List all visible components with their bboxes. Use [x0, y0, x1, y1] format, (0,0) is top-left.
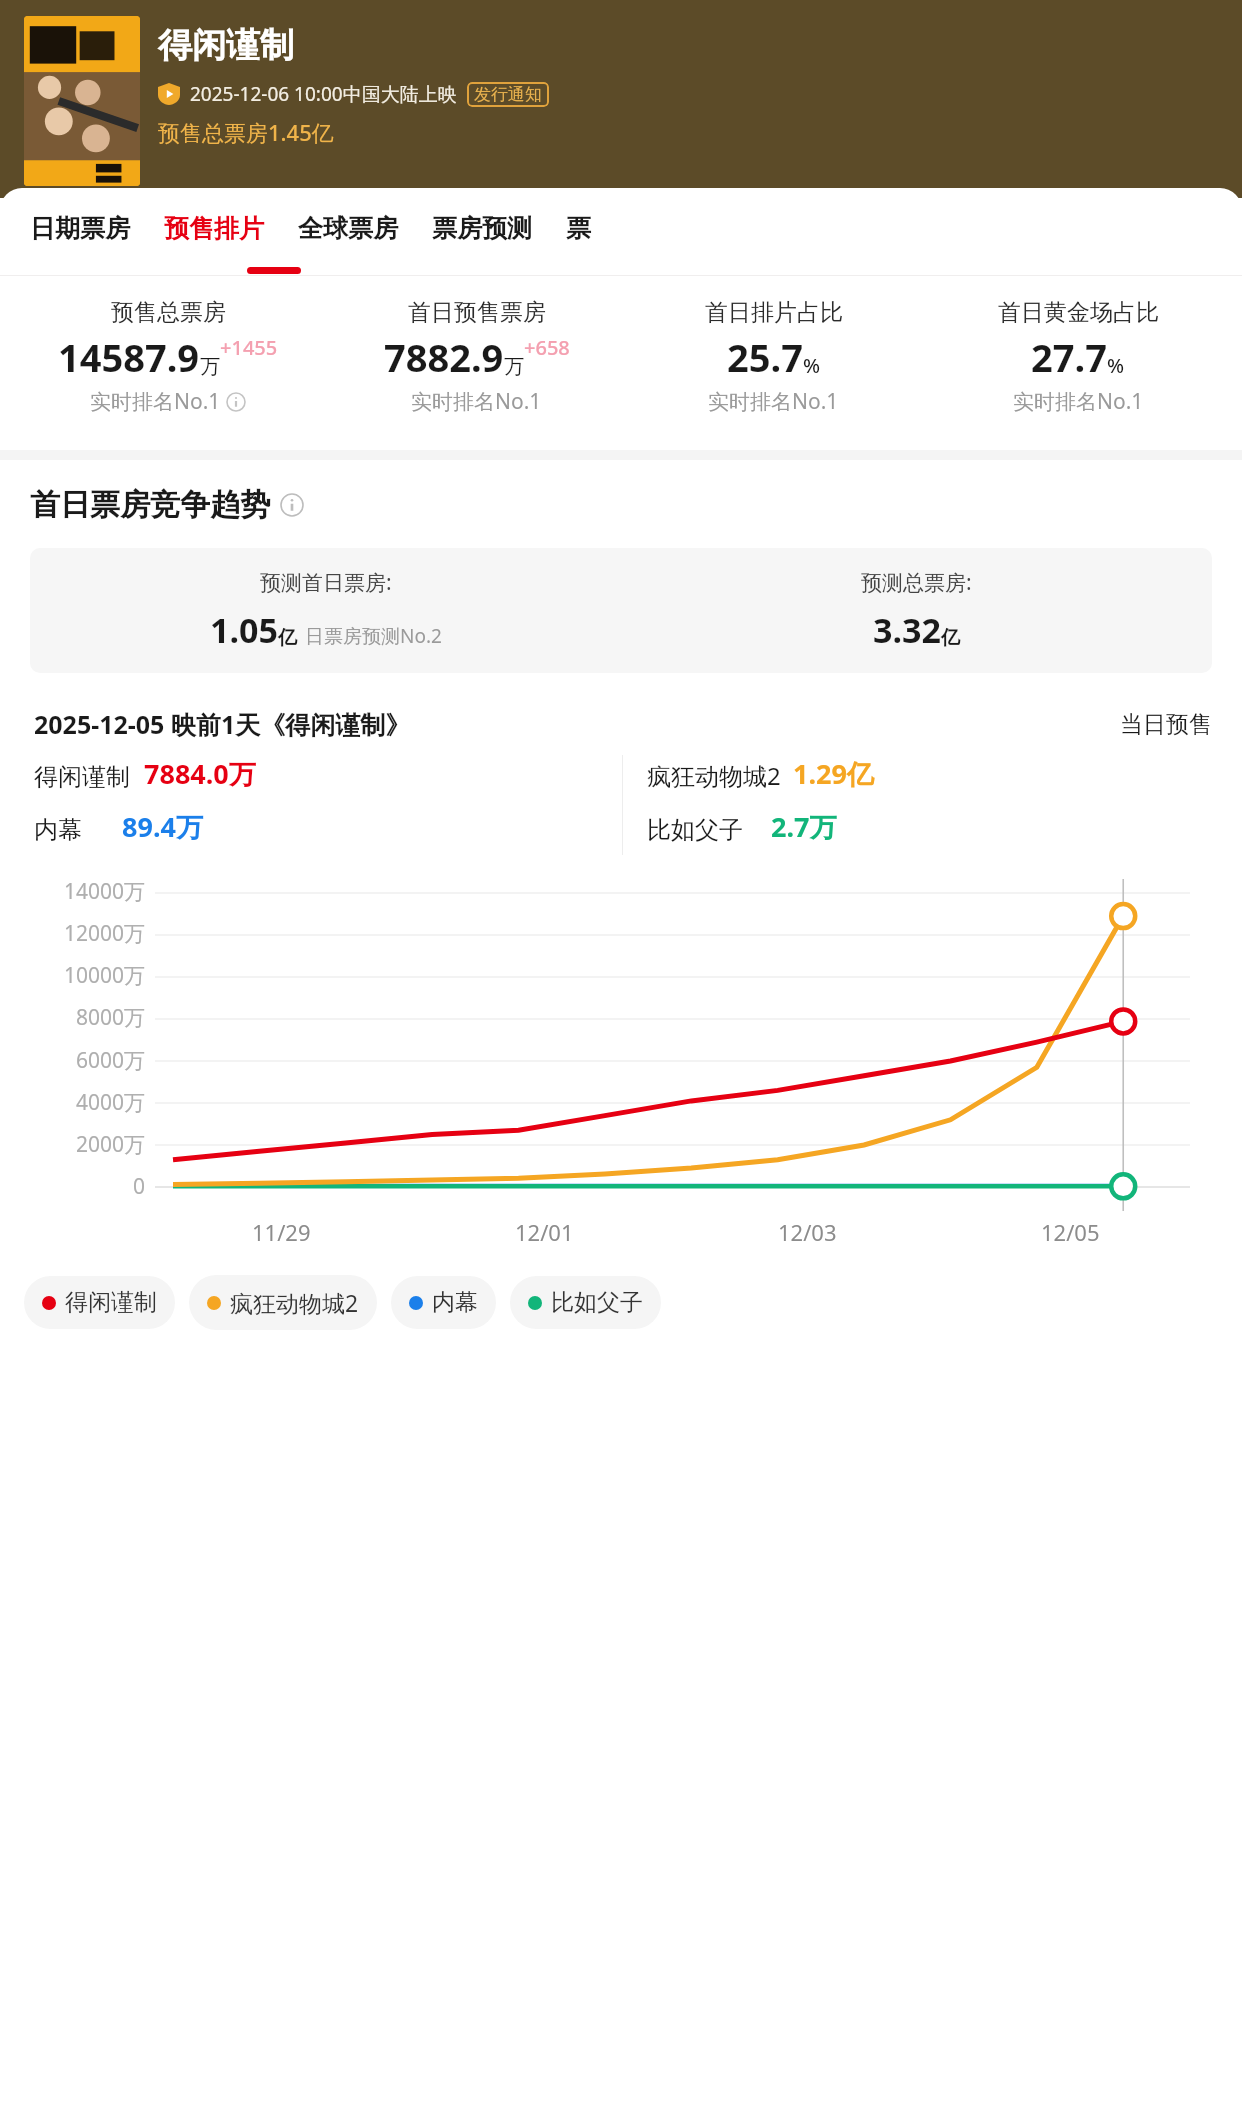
button[interactable]: 票	[566, 213, 591, 244]
staticText: 预售排片	[164, 213, 264, 244]
staticText: 比如父子	[647, 815, 743, 845]
staticText: 7884.0万	[144, 755, 256, 792]
staticText: 实时排名No.1	[411, 387, 542, 416]
staticText: 12/01	[515, 1217, 574, 1247]
staticText: 首日预售票房	[408, 298, 546, 327]
staticText: 2025-12-06 10:00中国大陆上映	[190, 81, 457, 107]
staticText: +658	[524, 334, 570, 361]
button[interactable]: 2025-12-05 映前1天《得闲谨制》	[22, 693, 1220, 861]
staticText: %	[803, 352, 821, 379]
staticText: 内幕	[34, 815, 82, 845]
staticText: 全球票房	[298, 213, 398, 244]
staticText: 14000万	[64, 877, 146, 906]
button[interactable]: 票房预测	[432, 213, 566, 244]
staticText: 万	[200, 354, 220, 379]
button[interactable]: 内幕	[391, 1276, 496, 1329]
staticText: 得闲谨制	[158, 24, 294, 67]
staticText: 疯狂动物城2	[647, 759, 781, 792]
button[interactable]: 预售排片	[164, 213, 298, 244]
button[interactable]: 比如父子	[510, 1276, 661, 1329]
staticText: %	[1107, 352, 1125, 379]
button[interactable]: 预测首日票房:	[30, 548, 1212, 673]
button[interactable]: 疯狂动物城2	[189, 1275, 377, 1330]
staticText: 内幕	[432, 1288, 478, 1317]
button[interactable]: 预售总票房	[8, 298, 328, 416]
staticText: 25.7	[727, 331, 803, 383]
staticText: 2000万	[76, 1130, 146, 1159]
staticText: 27.7	[1031, 331, 1107, 383]
staticText: 万	[504, 354, 524, 379]
staticText: 亿	[278, 626, 297, 650]
staticText: 3.32	[873, 607, 941, 653]
staticText: 票	[566, 213, 591, 244]
button[interactable]: 发行通知	[467, 82, 549, 107]
staticText: 首日票房竞争趋势	[30, 486, 270, 524]
staticText: 10000万	[64, 961, 146, 990]
staticText: 得闲谨制	[65, 1288, 157, 1317]
staticText: 4000万	[76, 1088, 146, 1117]
staticText: 预售总票房	[111, 298, 226, 327]
staticText: 12000万	[64, 919, 146, 948]
staticText: 14587.9	[58, 331, 200, 383]
staticText: 12/05	[1041, 1217, 1100, 1247]
staticText: 1.29亿	[793, 755, 874, 792]
staticText: 首日黄金场占比	[998, 298, 1159, 327]
staticText: 实时排名No.1	[708, 387, 839, 416]
button[interactable]: 首日预售票房	[328, 298, 625, 416]
button[interactable]: 全球票房	[298, 213, 432, 244]
staticText: 票房预测	[432, 213, 532, 244]
staticText: 12/03	[778, 1217, 837, 1247]
staticText: 2.7万	[771, 808, 837, 845]
staticText: 比如父子	[551, 1288, 643, 1317]
staticText: 亿	[941, 626, 960, 650]
button[interactable]: 首日黄金场占比	[922, 298, 1234, 416]
staticText: 2025-12-05 映前1天《得闲谨制》	[34, 707, 411, 741]
staticText: 11/29	[252, 1217, 311, 1247]
staticText: 预售总票房1.45亿	[158, 117, 334, 147]
staticText: 预测首日票房:	[260, 568, 392, 597]
staticText: 1.05	[210, 607, 278, 653]
button[interactable]: 首日排片占比	[625, 298, 922, 416]
staticText: 8000万	[76, 1003, 146, 1032]
button[interactable]: 日期票房	[30, 213, 164, 244]
staticText: 首日排片占比	[705, 298, 843, 327]
staticText: 日票房预测No.2	[305, 623, 442, 649]
staticText: 得闲谨制	[34, 762, 130, 792]
staticText: 发行通知	[474, 84, 542, 105]
staticText: 89.4万	[122, 808, 203, 845]
staticText: 疯狂动物城2	[230, 1287, 359, 1318]
button[interactable]: 得闲谨制	[24, 1276, 175, 1329]
staticText: 日期票房	[30, 213, 130, 244]
staticText: +1455	[220, 334, 278, 361]
staticText: 预测总票房:	[861, 568, 972, 597]
staticText: 0	[133, 1172, 146, 1201]
staticText: 实时排名No.1	[90, 387, 221, 416]
staticText: 实时排名No.1	[1013, 387, 1144, 416]
staticText: 6000万	[76, 1046, 146, 1075]
staticText: 当日预售	[1120, 710, 1212, 739]
staticText: 7882.9	[384, 331, 504, 383]
